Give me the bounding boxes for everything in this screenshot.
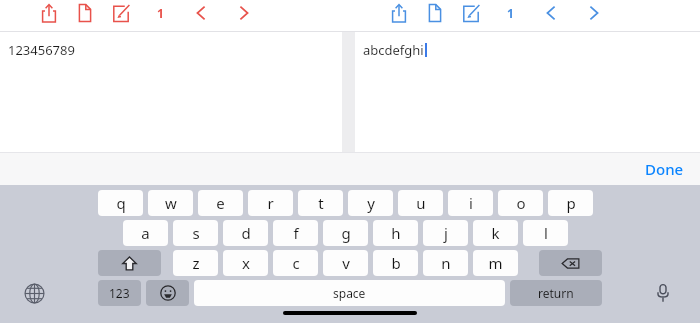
button[interactable]: x bbox=[223, 250, 268, 276]
button[interactable]: Dictation bbox=[651, 281, 675, 305]
staticText: h bbox=[391, 223, 401, 243]
staticText: e bbox=[216, 193, 225, 213]
button[interactable]: l bbox=[523, 220, 568, 246]
button[interactable]: s bbox=[173, 220, 218, 246]
button[interactable]: t bbox=[298, 190, 343, 216]
button[interactable]: m bbox=[473, 250, 518, 276]
button[interactable]: Compose bbox=[108, 0, 134, 26]
staticText: i bbox=[469, 193, 473, 213]
button[interactable]: 1 bbox=[503, 2, 518, 24]
staticText: l bbox=[544, 223, 548, 243]
button[interactable]: g bbox=[323, 220, 368, 246]
staticText: y bbox=[367, 193, 375, 213]
button[interactable]: Next bbox=[231, 0, 257, 26]
staticText: 1 bbox=[507, 5, 514, 21]
button[interactable]: r bbox=[248, 190, 293, 216]
button[interactable]: h bbox=[373, 220, 418, 246]
button[interactable]: k bbox=[473, 220, 518, 246]
button[interactable]: Emoji bbox=[146, 280, 189, 306]
button[interactable]: Document bbox=[72, 0, 98, 26]
staticText: q bbox=[116, 193, 126, 213]
button[interactable]: n bbox=[423, 250, 468, 276]
button[interactable]: i bbox=[448, 190, 493, 216]
button[interactable]: d bbox=[223, 220, 268, 246]
button[interactable]: y bbox=[348, 190, 393, 216]
staticText: return bbox=[538, 285, 574, 301]
button[interactable]: Done bbox=[629, 155, 700, 183]
staticText: u bbox=[416, 193, 426, 213]
staticText: p bbox=[566, 193, 576, 213]
staticText: a bbox=[141, 223, 150, 243]
button[interactable]: o bbox=[498, 190, 543, 216]
button[interactable]: abcdefghi bbox=[355, 32, 700, 152]
button[interactable]: Numbers bbox=[98, 280, 141, 306]
button[interactable]: Share bbox=[386, 0, 412, 26]
button[interactable]: e bbox=[198, 190, 243, 216]
button[interactable]: 1 bbox=[153, 2, 168, 24]
button[interactable]: Backspace bbox=[539, 250, 602, 276]
button[interactable]: Switch keyboard bbox=[22, 281, 46, 305]
staticText: c bbox=[292, 253, 300, 273]
button[interactable]: w bbox=[148, 190, 193, 216]
button[interactable]: a bbox=[123, 220, 168, 246]
button[interactable]: p bbox=[548, 190, 593, 216]
staticText: n bbox=[441, 253, 451, 273]
button[interactable]: Shift bbox=[98, 250, 161, 276]
staticText: Done bbox=[645, 159, 684, 179]
button[interactable]: b bbox=[373, 250, 418, 276]
button[interactable]: return bbox=[510, 280, 602, 306]
staticText: d bbox=[241, 223, 251, 243]
button[interactable]: Share bbox=[36, 0, 62, 26]
staticText: f bbox=[293, 223, 299, 243]
staticText: abcdefghi bbox=[363, 41, 424, 59]
button[interactable]: Compose bbox=[458, 0, 484, 26]
button[interactable]: Next bbox=[581, 0, 607, 26]
staticText: v bbox=[342, 253, 350, 273]
staticText: w bbox=[165, 193, 177, 213]
button[interactable]: z bbox=[173, 250, 218, 276]
staticText: b bbox=[391, 253, 401, 273]
button[interactable]: j bbox=[423, 220, 468, 246]
staticText: o bbox=[516, 193, 526, 213]
staticText: x bbox=[242, 253, 250, 273]
button[interactable]: f bbox=[273, 220, 318, 246]
button[interactable]: c bbox=[273, 250, 318, 276]
button[interactable]: Previous bbox=[538, 0, 564, 26]
button[interactable]: Previous bbox=[188, 0, 214, 26]
staticText: z bbox=[192, 253, 200, 273]
staticText: m bbox=[488, 253, 503, 273]
button[interactable]: u bbox=[398, 190, 443, 216]
button[interactable]: q bbox=[98, 190, 143, 216]
staticText: j bbox=[444, 223, 448, 243]
staticText: space bbox=[333, 285, 366, 301]
staticText: g bbox=[341, 223, 351, 243]
staticText: k bbox=[491, 223, 500, 243]
staticText: 123 bbox=[109, 285, 130, 301]
staticText: 1 bbox=[157, 5, 164, 21]
staticText: r bbox=[267, 193, 274, 213]
button[interactable]: Document bbox=[422, 0, 448, 26]
staticText: 123456789 bbox=[8, 41, 75, 59]
staticText: t bbox=[318, 193, 324, 213]
button[interactable]: space bbox=[194, 280, 505, 306]
button[interactable]: v bbox=[323, 250, 368, 276]
staticText: s bbox=[192, 223, 200, 243]
button[interactable]: 123456789 bbox=[0, 32, 342, 152]
